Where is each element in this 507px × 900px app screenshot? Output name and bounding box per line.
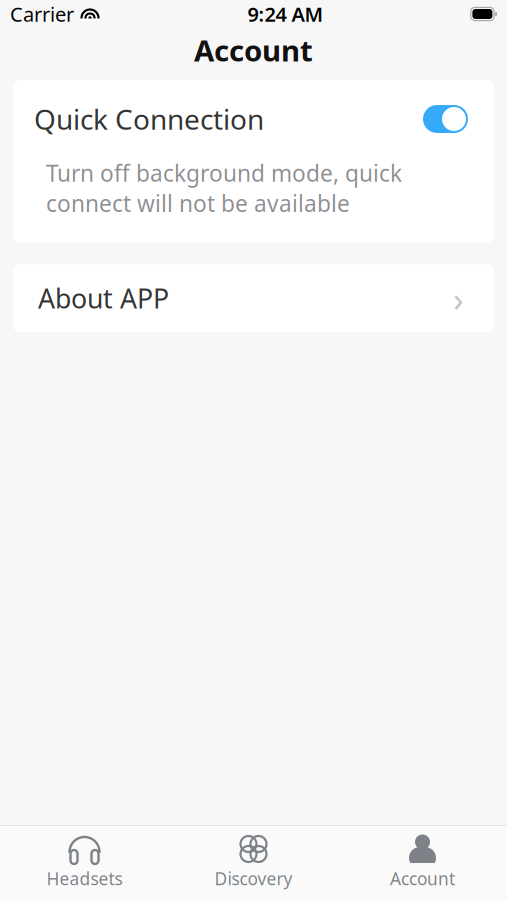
- staticText: Headsets: [46, 867, 122, 890]
- button[interactable]: Quick Connection toggle: [423, 105, 468, 133]
- staticText: 9:24 AM: [247, 1, 323, 27]
- button[interactable]: Discovery: [169, 826, 338, 900]
- staticText: ›: [453, 275, 464, 321]
- staticText: About APP: [38, 280, 169, 316]
- staticText: Account: [390, 867, 455, 890]
- staticText: Carrier: [10, 1, 74, 27]
- button[interactable]: Headsets: [0, 826, 169, 900]
- staticText: Turn off background mode, quick connect …: [46, 158, 402, 218]
- staticText: Quick Connection: [34, 100, 264, 138]
- staticText: Account: [194, 30, 313, 69]
- staticText: Discovery: [214, 867, 292, 890]
- button[interactable]: Account: [338, 826, 507, 900]
- button[interactable]: About APP: [13, 264, 494, 332]
